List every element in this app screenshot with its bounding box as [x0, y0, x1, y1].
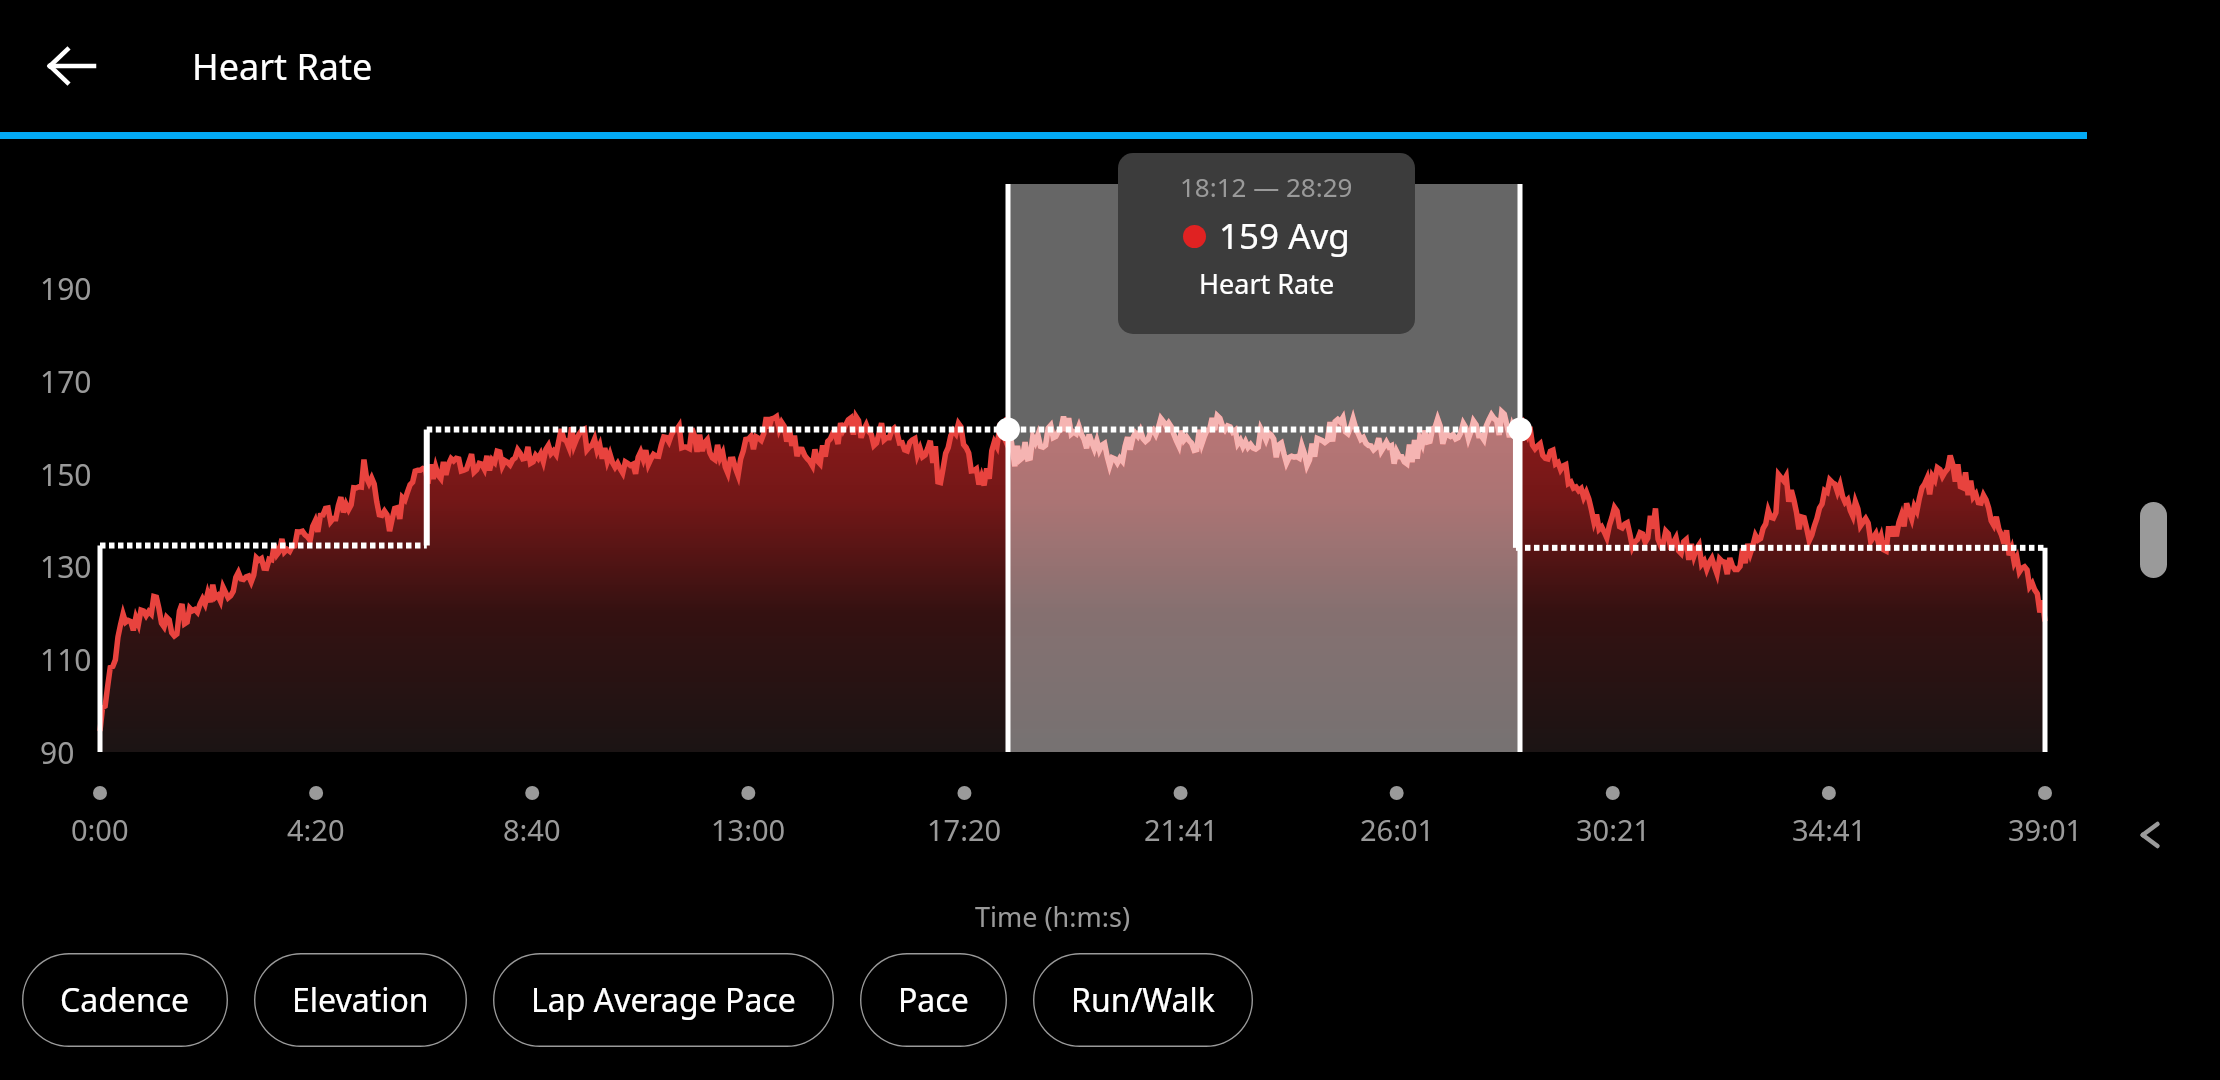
button[interactable]: Cadence	[22, 953, 228, 1047]
button[interactable]: Run/Walk	[1033, 953, 1253, 1047]
staticText: 26:01	[1360, 810, 1435, 849]
staticText: 90	[40, 732, 75, 773]
staticText: 130	[40, 546, 92, 587]
staticText: Run/Walk	[1071, 978, 1215, 1022]
staticText: 21:41	[1144, 810, 1219, 849]
button[interactable]: Back	[34, 28, 110, 104]
staticText: 39:01	[2008, 810, 2083, 849]
button[interactable]: Lap Average Pace	[493, 953, 834, 1047]
staticText: Heart Rate	[192, 42, 373, 91]
staticText: 18:12 — 28:29	[1180, 169, 1353, 204]
staticText: 0:00	[71, 810, 129, 849]
button[interactable]: Previous	[2128, 812, 2174, 858]
staticText: Elevation	[292, 978, 429, 1022]
staticText: 17:20	[927, 810, 1002, 849]
staticText: 159 Avg	[1219, 212, 1350, 260]
staticText: Pace	[898, 978, 969, 1022]
staticText: Heart Rate	[1199, 265, 1335, 302]
staticText: 34:41	[1792, 810, 1867, 849]
staticText: 110	[40, 639, 92, 680]
button[interactable]: Pace	[860, 953, 1007, 1047]
staticText: Lap Average Pace	[531, 978, 796, 1022]
staticText: Time (h:m:s)	[975, 898, 1131, 935]
button[interactable]: 18:12 — 28:29	[1118, 153, 1415, 334]
staticText: 4:20	[287, 810, 345, 849]
staticText: 190	[40, 268, 92, 309]
button[interactable]: Elevation	[254, 953, 467, 1047]
staticText: 170	[40, 361, 92, 402]
staticText: 30:21	[1576, 810, 1651, 849]
staticText: 8:40	[503, 810, 561, 849]
staticText: 150	[40, 454, 92, 495]
staticText: 13:00	[711, 810, 786, 849]
staticText: Cadence	[60, 978, 190, 1022]
